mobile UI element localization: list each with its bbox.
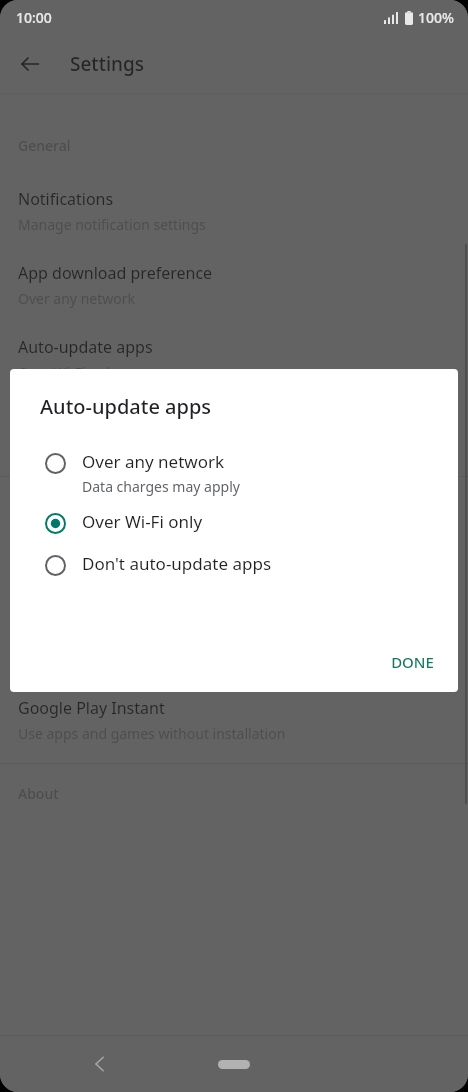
staticText: Over Wi-Fi only <box>82 510 203 533</box>
staticText: Notifications <box>18 188 114 210</box>
staticText: Manage notification settings <box>18 215 206 234</box>
staticText: 10:00 <box>16 8 52 27</box>
button[interactable]: DONE <box>375 640 450 684</box>
button[interactable]: App download preference <box>0 248 468 322</box>
staticText: Over any network <box>18 289 135 308</box>
staticText: DONE <box>391 652 434 672</box>
button[interactable]: Home <box>203 1043 265 1085</box>
button[interactable]: Don't auto-update apps <box>10 544 458 586</box>
staticText: Don't auto-update apps <box>82 552 272 575</box>
staticText: Auto-update apps <box>40 393 212 420</box>
button[interactable]: Over Wi-Fi only <box>10 502 458 544</box>
staticText: User controls <box>18 497 108 516</box>
button[interactable]: Back <box>78 1042 122 1086</box>
staticText: Wi-Fi only <box>18 437 82 456</box>
staticText: Over Wi-Fi only <box>18 363 117 382</box>
staticText: App download preference <box>18 262 213 284</box>
staticText: Auto-update apps <box>18 336 153 358</box>
button[interactable]: Back <box>8 42 52 86</box>
button[interactable]: Google Play Instant <box>0 683 468 757</box>
staticText: Over any network <box>82 450 225 473</box>
button[interactable]: Parental controls <box>0 535 468 609</box>
staticText: 100% <box>418 8 454 27</box>
staticText: Google Play Instant <box>18 697 165 719</box>
button[interactable]: Require authentication for purchases <box>0 609 468 683</box>
button[interactable]: Over any network <box>10 442 458 502</box>
staticText: Auto-play videos <box>18 410 143 432</box>
staticText: Data charges may apply <box>82 477 240 496</box>
staticText: About <box>18 784 59 803</box>
staticText: Settings <box>70 51 144 77</box>
staticText: Parental controls <box>18 549 146 571</box>
staticText: Use apps and games without installation <box>18 724 286 743</box>
staticText: General <box>18 136 71 155</box>
button[interactable]: Auto-play videos <box>0 396 468 470</box>
button[interactable]: Auto-update apps <box>0 322 468 396</box>
button[interactable]: Notifications <box>0 174 468 248</box>
